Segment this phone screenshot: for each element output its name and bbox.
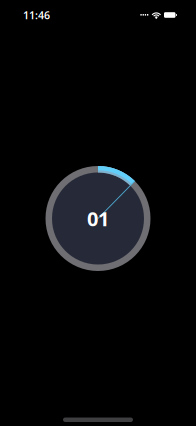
- staticText: 01: [87, 205, 109, 232]
- button[interactable]: Timer 01: [0, 0, 196, 426]
- staticText: 11:46: [23, 8, 50, 22]
